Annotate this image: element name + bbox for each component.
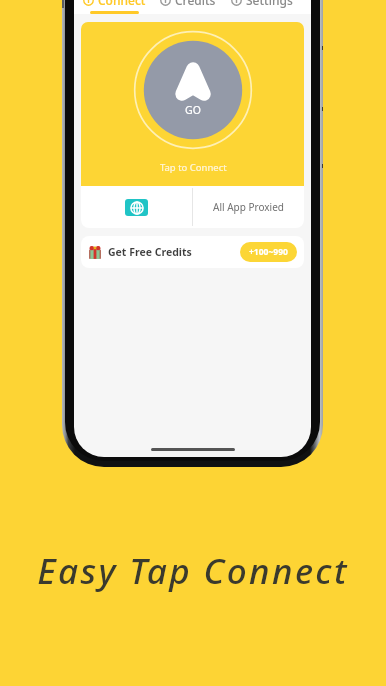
staticText: Easy Tap Connect: [37, 547, 349, 595]
other: Global proxy mode: [125, 199, 148, 216]
staticText: Connect: [98, 0, 146, 8]
button[interactable]: Settings: [231, 0, 293, 14]
staticText: Get Free Credits: [108, 245, 192, 259]
staticText: Tap to Connect: [160, 161, 227, 174]
staticText: All App Proxied: [213, 200, 284, 214]
button[interactable]: GO, tap to connect: [134, 31, 252, 149]
staticText: GO: [185, 103, 201, 117]
button[interactable]: Global proxy mode: [81, 186, 192, 228]
staticText: +100~990: [249, 246, 288, 258]
button[interactable]: All App Proxied: [193, 186, 304, 228]
staticText: Credits: [175, 0, 216, 8]
button[interactable]: Credits: [160, 0, 216, 14]
button[interactable]: GO, tap to connect: [81, 22, 304, 186]
staticText: Settings: [246, 0, 293, 8]
button[interactable]: Get Free Credits: [81, 236, 304, 268]
button[interactable]: Connect: [83, 0, 146, 14]
